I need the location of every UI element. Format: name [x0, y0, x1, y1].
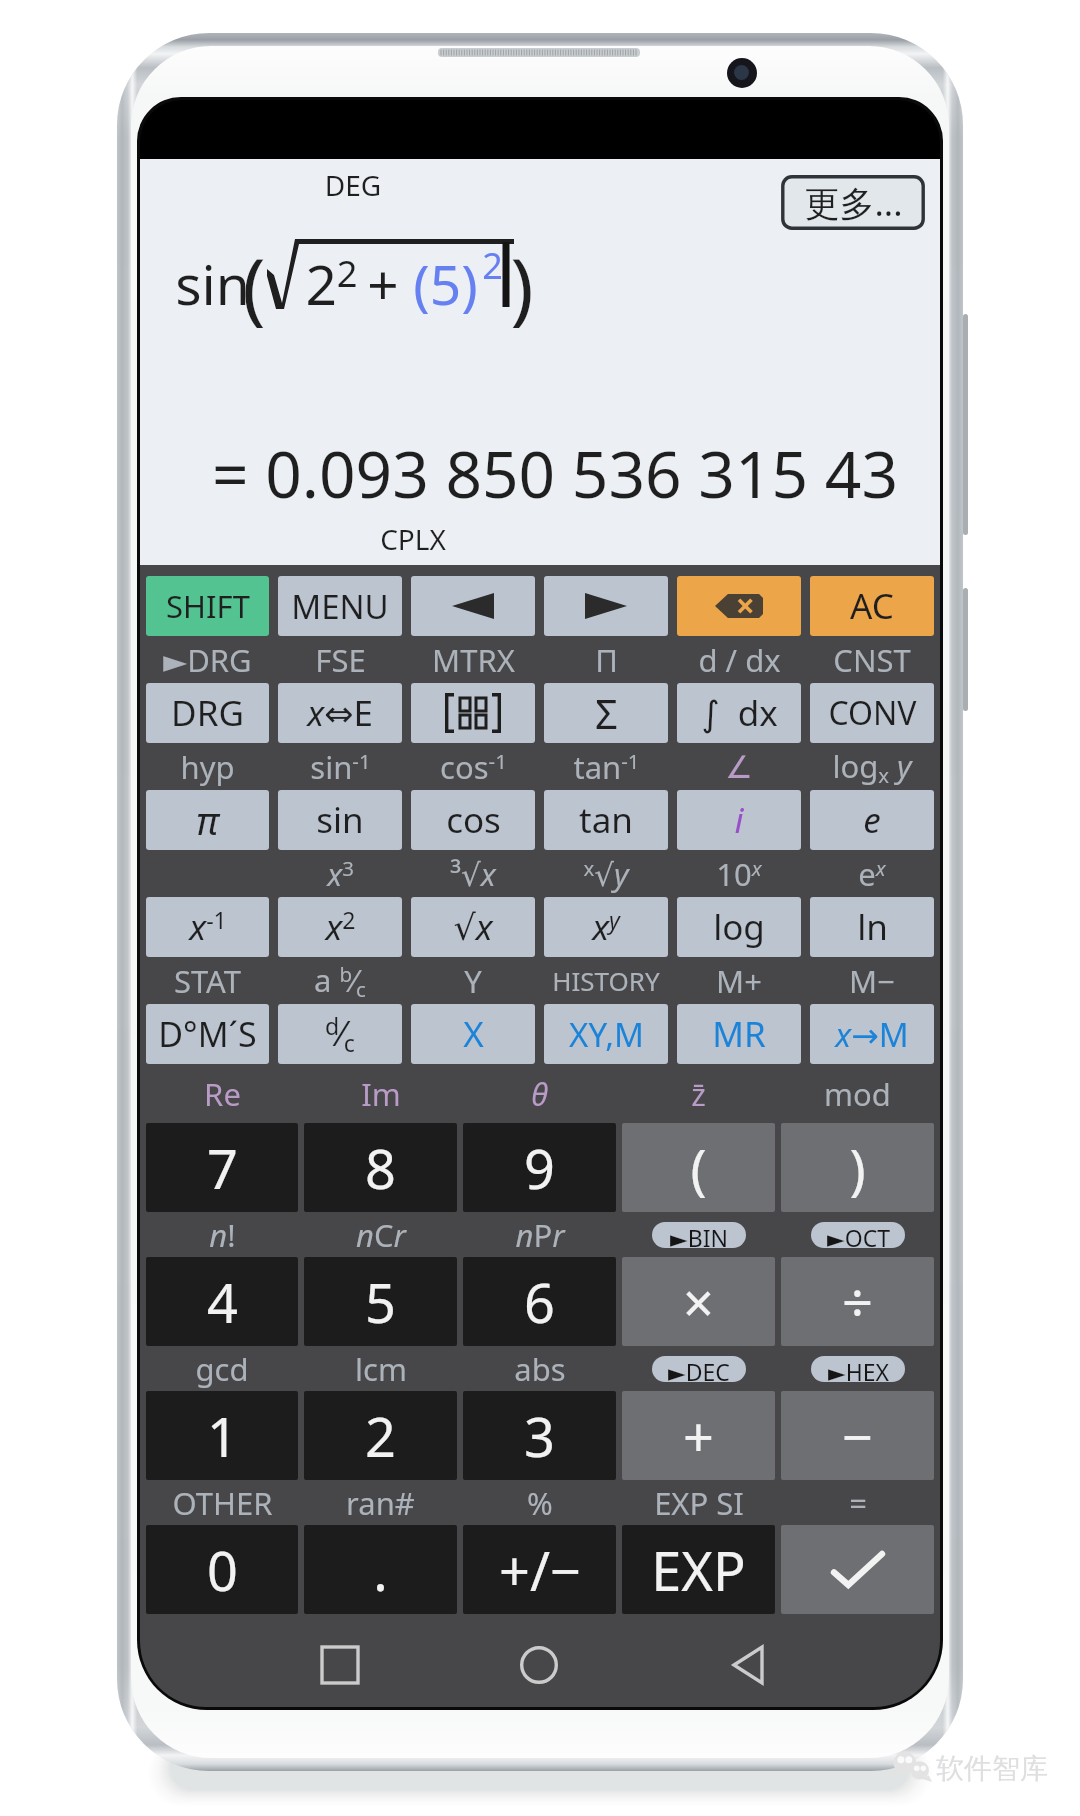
button[interactable]: Σ	[544, 683, 668, 743]
staticText: 7	[207, 1131, 238, 1205]
staticText: ln	[857, 903, 888, 951]
button[interactable]: ∫ dx	[677, 683, 801, 743]
button[interactable]: xy	[544, 897, 668, 957]
staticText: EXP	[651, 1533, 746, 1607]
button[interactable]: π	[146, 790, 269, 850]
button[interactable]: XY,M	[544, 1004, 668, 1064]
button[interactable]: tan	[544, 790, 668, 850]
button[interactable]: Move left	[411, 576, 535, 636]
button[interactable]: 0	[146, 1525, 298, 1614]
button[interactable]: 5	[304, 1257, 457, 1346]
button[interactable]: Equals	[781, 1525, 934, 1614]
staticText: cos-1	[440, 746, 507, 788]
button[interactable]: MENU	[278, 576, 402, 636]
staticText: Π	[595, 639, 618, 681]
staticText: %	[527, 1482, 553, 1524]
staticText: FSE	[315, 639, 366, 681]
button[interactable]: d⁄c	[278, 1004, 402, 1064]
button[interactable]: i	[677, 790, 801, 850]
button[interactable]: 3	[463, 1391, 616, 1480]
button[interactable]: X	[411, 1004, 535, 1064]
button[interactable]: 2	[304, 1391, 457, 1480]
staticText: MENU	[291, 584, 389, 629]
button[interactable]: +	[622, 1391, 775, 1480]
button[interactable]: Home	[502, 1628, 576, 1702]
button[interactable]: ÷	[781, 1257, 934, 1346]
staticText: logx y	[832, 745, 912, 789]
staticText: sin-1	[310, 746, 371, 788]
staticText: Im	[361, 1073, 401, 1115]
button[interactable]: 更多...	[781, 175, 925, 230]
button[interactable]: Backspace	[677, 576, 801, 636]
staticText: 22	[305, 246, 358, 321]
staticText: ►DEC	[668, 1356, 730, 1382]
staticText: ►DRG	[163, 639, 252, 681]
button[interactable]: x-1	[146, 897, 269, 957]
button[interactable]: ►OCT	[811, 1222, 905, 1248]
staticText: =	[849, 1482, 867, 1524]
button[interactable]: cos	[411, 790, 535, 850]
button[interactable]: ln	[810, 897, 934, 957]
staticText: sin	[175, 246, 250, 321]
staticText: ×	[683, 1265, 714, 1339]
staticText: π	[196, 794, 219, 846]
button[interactable]: x2	[278, 897, 402, 957]
button[interactable]: EXP	[622, 1525, 775, 1614]
button[interactable]: Recents	[303, 1628, 377, 1702]
staticText: ∫ dx	[701, 689, 778, 737]
staticText: i	[734, 796, 744, 844]
button[interactable]: Matrix	[411, 683, 535, 743]
staticText: D°M´S	[158, 1011, 257, 1057]
button[interactable]: CONV	[810, 683, 934, 743]
button[interactable]: D°M´S	[146, 1004, 269, 1064]
staticText: ►BIN	[670, 1222, 728, 1248]
staticText: MR	[712, 1010, 766, 1058]
button[interactable]: −	[781, 1391, 934, 1480]
staticText: 更多...	[804, 179, 903, 227]
staticText: = 0.093 850 536 315 43	[140, 430, 898, 517]
staticText: 4	[207, 1265, 238, 1339]
staticText: ³√x	[450, 853, 496, 895]
button[interactable]: 6	[463, 1257, 616, 1346]
button[interactable]: 9	[463, 1123, 616, 1212]
button[interactable]: 8	[304, 1123, 457, 1212]
button[interactable]: x→M	[810, 1004, 934, 1064]
button[interactable]: ×	[622, 1257, 775, 1346]
staticText: AC	[850, 582, 894, 630]
button[interactable]: log	[677, 897, 801, 957]
button[interactable]: ►BIN	[652, 1222, 746, 1248]
staticText: x2	[325, 903, 356, 951]
button[interactable]: Back	[711, 1628, 785, 1702]
button[interactable]: +/−	[463, 1525, 616, 1614]
button[interactable]: DRG	[146, 683, 269, 743]
button[interactable]: 1	[146, 1391, 298, 1480]
staticText: 3	[524, 1399, 555, 1473]
staticText: )	[849, 1131, 866, 1205]
button[interactable]: 4	[146, 1257, 298, 1346]
button[interactable]: 7	[146, 1123, 298, 1212]
button[interactable]: MR	[677, 1004, 801, 1064]
button[interactable]: (	[622, 1123, 775, 1212]
button[interactable]: √x	[411, 897, 535, 957]
staticText: ran#	[346, 1482, 415, 1524]
button[interactable]: sin	[278, 790, 402, 850]
staticText: OTHER	[172, 1482, 273, 1524]
button[interactable]: )	[781, 1123, 934, 1212]
staticText: EXP SI	[654, 1482, 744, 1524]
staticText: ∠	[725, 749, 753, 785]
staticText: nCr	[356, 1214, 406, 1256]
button[interactable]: .	[304, 1525, 457, 1614]
button[interactable]: x⇔E	[278, 683, 402, 743]
button[interactable]: e	[810, 790, 934, 850]
staticText: 9	[524, 1131, 555, 1205]
staticText: 8	[365, 1131, 396, 1205]
button[interactable]: AC	[810, 576, 934, 636]
staticText: .	[373, 1533, 388, 1607]
button[interactable]: ►HEX	[811, 1356, 905, 1382]
button[interactable]: Move right	[544, 576, 668, 636]
staticText: XY,M	[569, 1012, 644, 1057]
staticText: −	[842, 1399, 873, 1473]
staticText: X	[463, 1010, 484, 1058]
button[interactable]: ►DEC	[652, 1356, 746, 1382]
button[interactable]: SHIFT	[146, 576, 269, 636]
